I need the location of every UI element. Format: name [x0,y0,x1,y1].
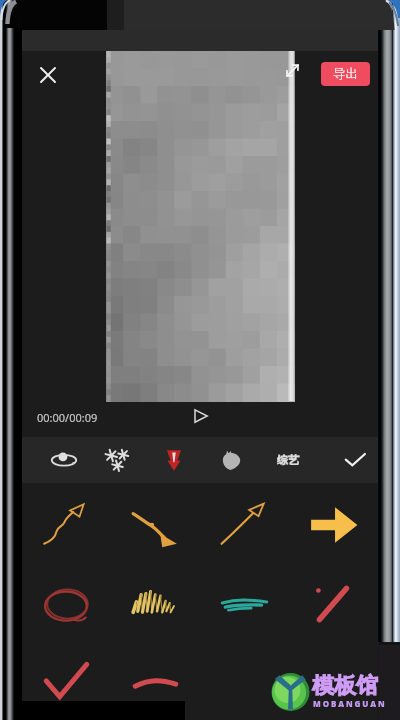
button[interactable]: check [331,437,379,483]
button[interactable]: Squiggle arrow [22,485,111,564]
button[interactable]: Circle [22,564,111,643]
button[interactable]: Fullscreen [284,62,301,79]
button[interactable]: Play [189,404,213,428]
button[interactable]: zongyi [264,437,312,483]
button[interactable]: Red check [22,643,111,720]
button[interactable]: Empty [200,643,289,720]
button[interactable]: berry [207,437,255,483]
button[interactable]: Empty [289,643,378,720]
button[interactable]: Red dash [111,643,200,720]
button[interactable]: Close [33,60,62,89]
button[interactable]: Gold scribble [111,564,200,643]
button[interactable]: Red slash [289,564,378,643]
button[interactable]: planet [40,437,88,483]
staticText: MOBANGUAN [313,698,387,709]
button[interactable]: snow [93,437,141,483]
button[interactable]: 导出 [321,62,370,86]
staticText: 模板馆 [312,672,378,700]
button[interactable]: Bold arrow [289,485,378,564]
staticText: 00:00/00:09 [37,410,98,425]
staticText: 导出 [333,66,358,82]
button[interactable]: Curved arrow [111,485,200,564]
button[interactable]: arrowdown [150,437,198,483]
staticText: 综艺 [277,453,299,467]
button[interactable]: Up arrow [200,485,289,564]
button[interactable]: Teal underline [200,564,289,643]
